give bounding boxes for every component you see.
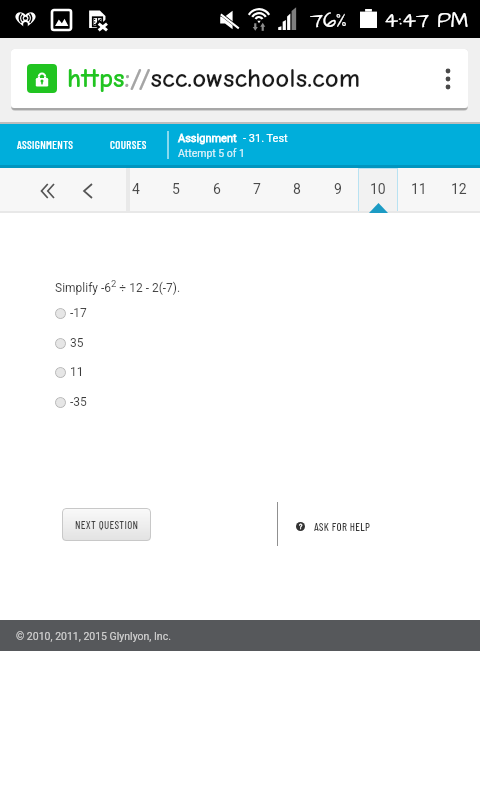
staticText: Attempt 5 of 1	[178, 147, 245, 159]
button[interactable]: 7	[237, 168, 277, 213]
button[interactable]: 8	[277, 168, 317, 213]
staticText: NEXT QUESTION	[75, 518, 139, 531]
button[interactable]: 12	[439, 168, 479, 213]
button[interactable]: -35	[40, 387, 220, 417]
button[interactable]: ASSIGNMENTS	[15, 124, 76, 165]
button[interactable]: NEXT QUESTION	[62, 508, 151, 541]
button[interactable]: 35	[40, 328, 220, 358]
button[interactable]: More options	[428, 49, 468, 108]
staticText: 11	[70, 365, 84, 379]
staticText: 11	[411, 181, 427, 197]
button[interactable]: https://scc.owschools.com	[11, 49, 468, 108]
staticText: © 2010, 2011, 2015 Glynlyon, Inc.	[16, 630, 171, 642]
staticText: 12	[451, 181, 467, 197]
staticText: 6	[213, 181, 221, 197]
staticText: 4:47 PM	[384, 6, 469, 35]
staticText: 7	[253, 181, 261, 197]
button[interactable]: 4	[116, 168, 156, 213]
button[interactable]: Previous page	[68, 168, 108, 213]
button[interactable]: 6	[197, 168, 237, 213]
staticText: 9	[334, 181, 342, 197]
button[interactable]: 11	[399, 168, 439, 213]
staticText: ASK FOR HELP	[314, 520, 371, 533]
button[interactable]: -17	[40, 298, 220, 328]
staticText: COURSES	[110, 138, 147, 151]
button[interactable]: First page	[27, 168, 67, 213]
staticText: 76%	[310, 6, 347, 35]
button[interactable]: 11	[40, 357, 220, 387]
staticText: 10	[370, 181, 386, 197]
staticText: ?	[299, 523, 303, 531]
staticText: - 31. Test	[243, 132, 288, 145]
staticText: 8	[293, 181, 301, 197]
button[interactable]: 5	[156, 168, 196, 213]
button[interactable]: ?	[296, 513, 371, 539]
staticText: 35	[70, 336, 84, 350]
button[interactable]: COURSES	[100, 124, 156, 165]
staticText: https://scc.owschools.com	[67, 63, 361, 94]
button[interactable]: 10	[358, 168, 398, 213]
staticText: Simplify -62 ÷ 12 - 2(-7).	[55, 278, 181, 295]
staticText: ASSIGNMENTS	[17, 138, 74, 151]
staticText: -17	[70, 306, 87, 320]
staticText: -35	[70, 395, 87, 409]
staticText: 4	[132, 181, 140, 197]
button[interactable]: 9	[318, 168, 358, 213]
staticText: Assignment	[178, 132, 237, 145]
staticText: 5	[172, 181, 180, 197]
